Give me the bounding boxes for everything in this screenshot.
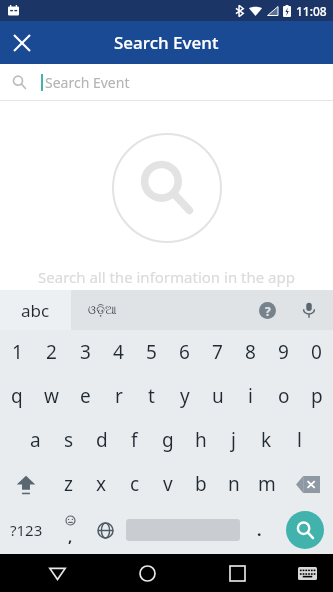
staticText: 3 — [80, 339, 91, 365]
staticText: u — [212, 383, 224, 409]
button[interactable]: 0 — [300, 330, 333, 374]
staticText: 11:08 — [296, 3, 327, 19]
staticText: l — [297, 427, 302, 453]
button[interactable]: Shift — [0, 462, 51, 506]
staticText: q — [11, 383, 23, 409]
button[interactable]: ଓଡ଼ିଆ — [71, 290, 133, 330]
button[interactable]: m — [250, 462, 283, 506]
button[interactable]: 1 — [0, 330, 34, 374]
staticText: Search Event — [114, 31, 219, 54]
button[interactable]: o — [267, 374, 300, 418]
staticText: 1 — [12, 339, 23, 365]
button[interactable]: y — [168, 374, 201, 418]
button[interactable]: q — [0, 374, 34, 418]
staticText: d — [96, 427, 108, 453]
button[interactable]: n — [217, 462, 250, 506]
staticText: 9 — [278, 339, 289, 365]
button[interactable]: 2 — [34, 330, 68, 374]
button[interactable]: Help — [247, 290, 287, 330]
button[interactable]: k — [250, 418, 283, 462]
button[interactable]: x — [85, 462, 118, 506]
staticText: 8 — [245, 339, 256, 365]
staticText: ? — [265, 303, 271, 319]
staticText: z — [64, 471, 73, 497]
button[interactable]: c — [118, 462, 151, 506]
staticText: i — [248, 383, 253, 409]
button[interactable]: l — [283, 418, 316, 462]
button[interactable] — [123, 506, 242, 554]
staticText: . — [257, 519, 262, 541]
staticText: p — [311, 383, 323, 409]
staticText: y — [180, 383, 190, 409]
staticText: ?123 — [10, 520, 43, 540]
staticText: 2 — [46, 339, 57, 365]
button[interactable]: Recent apps — [215, 554, 259, 592]
button[interactable]: Emoji and comma — [53, 506, 88, 554]
button[interactable]: 5 — [135, 330, 168, 374]
staticText: h — [195, 427, 207, 453]
button[interactable]: f — [118, 418, 151, 462]
staticText: 7 — [212, 339, 223, 365]
staticText: m — [258, 471, 276, 497]
staticText: k — [261, 427, 272, 453]
staticText: ଓଡ଼ିଆ — [88, 304, 117, 316]
button[interactable]: Home — [125, 554, 169, 592]
button[interactable]: j — [217, 418, 250, 462]
button[interactable]: Switch keyboard — [287, 554, 327, 592]
staticText: w — [44, 383, 59, 409]
button[interactable]: Close — [0, 21, 43, 64]
staticText: 6 — [179, 339, 190, 365]
button[interactable]: z — [51, 462, 85, 506]
staticText: j — [231, 427, 236, 453]
button[interactable]: w — [34, 374, 68, 418]
button[interactable]: Voice input — [289, 290, 329, 330]
button[interactable]: e — [68, 374, 102, 418]
button[interactable]: Backspace — [283, 462, 333, 506]
staticText: abc — [21, 299, 50, 322]
button[interactable]: Change keyboard language — [88, 506, 123, 554]
staticText: 0 — [311, 339, 322, 365]
button[interactable]: p — [300, 374, 333, 418]
staticText: 4 — [113, 339, 124, 365]
button[interactable]: h — [184, 418, 217, 462]
button[interactable]: 9 — [267, 330, 300, 374]
staticText: n — [228, 471, 240, 497]
button[interactable]: a — [18, 418, 52, 462]
button[interactable]: ?123 — [0, 506, 53, 554]
button[interactable]: i — [234, 374, 267, 418]
staticText: x — [96, 471, 107, 497]
staticText: 5 — [146, 339, 157, 365]
staticText: t — [148, 383, 155, 409]
staticText: o — [278, 383, 290, 409]
staticText: Search Event — [45, 73, 130, 92]
button[interactable]: 3 — [68, 330, 102, 374]
button[interactable]: b — [184, 462, 217, 506]
button[interactable]: . — [242, 506, 277, 554]
staticText: c — [130, 471, 140, 497]
button[interactable]: 7 — [201, 330, 234, 374]
button[interactable]: 8 — [234, 330, 267, 374]
button[interactable]: g — [151, 418, 184, 462]
button[interactable]: r — [102, 374, 135, 418]
button[interactable]: Search Event — [0, 64, 333, 100]
button[interactable]: s — [52, 418, 85, 462]
button[interactable]: 4 — [102, 330, 135, 374]
button[interactable]: d — [85, 418, 118, 462]
button[interactable]: Back — [35, 554, 79, 592]
staticText: a — [30, 427, 41, 453]
staticText: Search all the information in the app — [38, 267, 295, 287]
button[interactable]: v — [151, 462, 184, 506]
button[interactable]: t — [135, 374, 168, 418]
staticText: s — [64, 427, 74, 453]
button[interactable]: abc — [0, 290, 71, 330]
button[interactable]: u — [201, 374, 234, 418]
button[interactable]: 6 — [168, 330, 201, 374]
staticText: b — [195, 471, 207, 497]
staticText: g — [162, 427, 174, 453]
staticText: , — [68, 526, 73, 546]
staticText: r — [115, 383, 123, 409]
button[interactable]: Search — [277, 506, 333, 554]
staticText: v — [163, 471, 173, 497]
staticText: f — [131, 427, 138, 453]
staticText: e — [80, 383, 91, 409]
